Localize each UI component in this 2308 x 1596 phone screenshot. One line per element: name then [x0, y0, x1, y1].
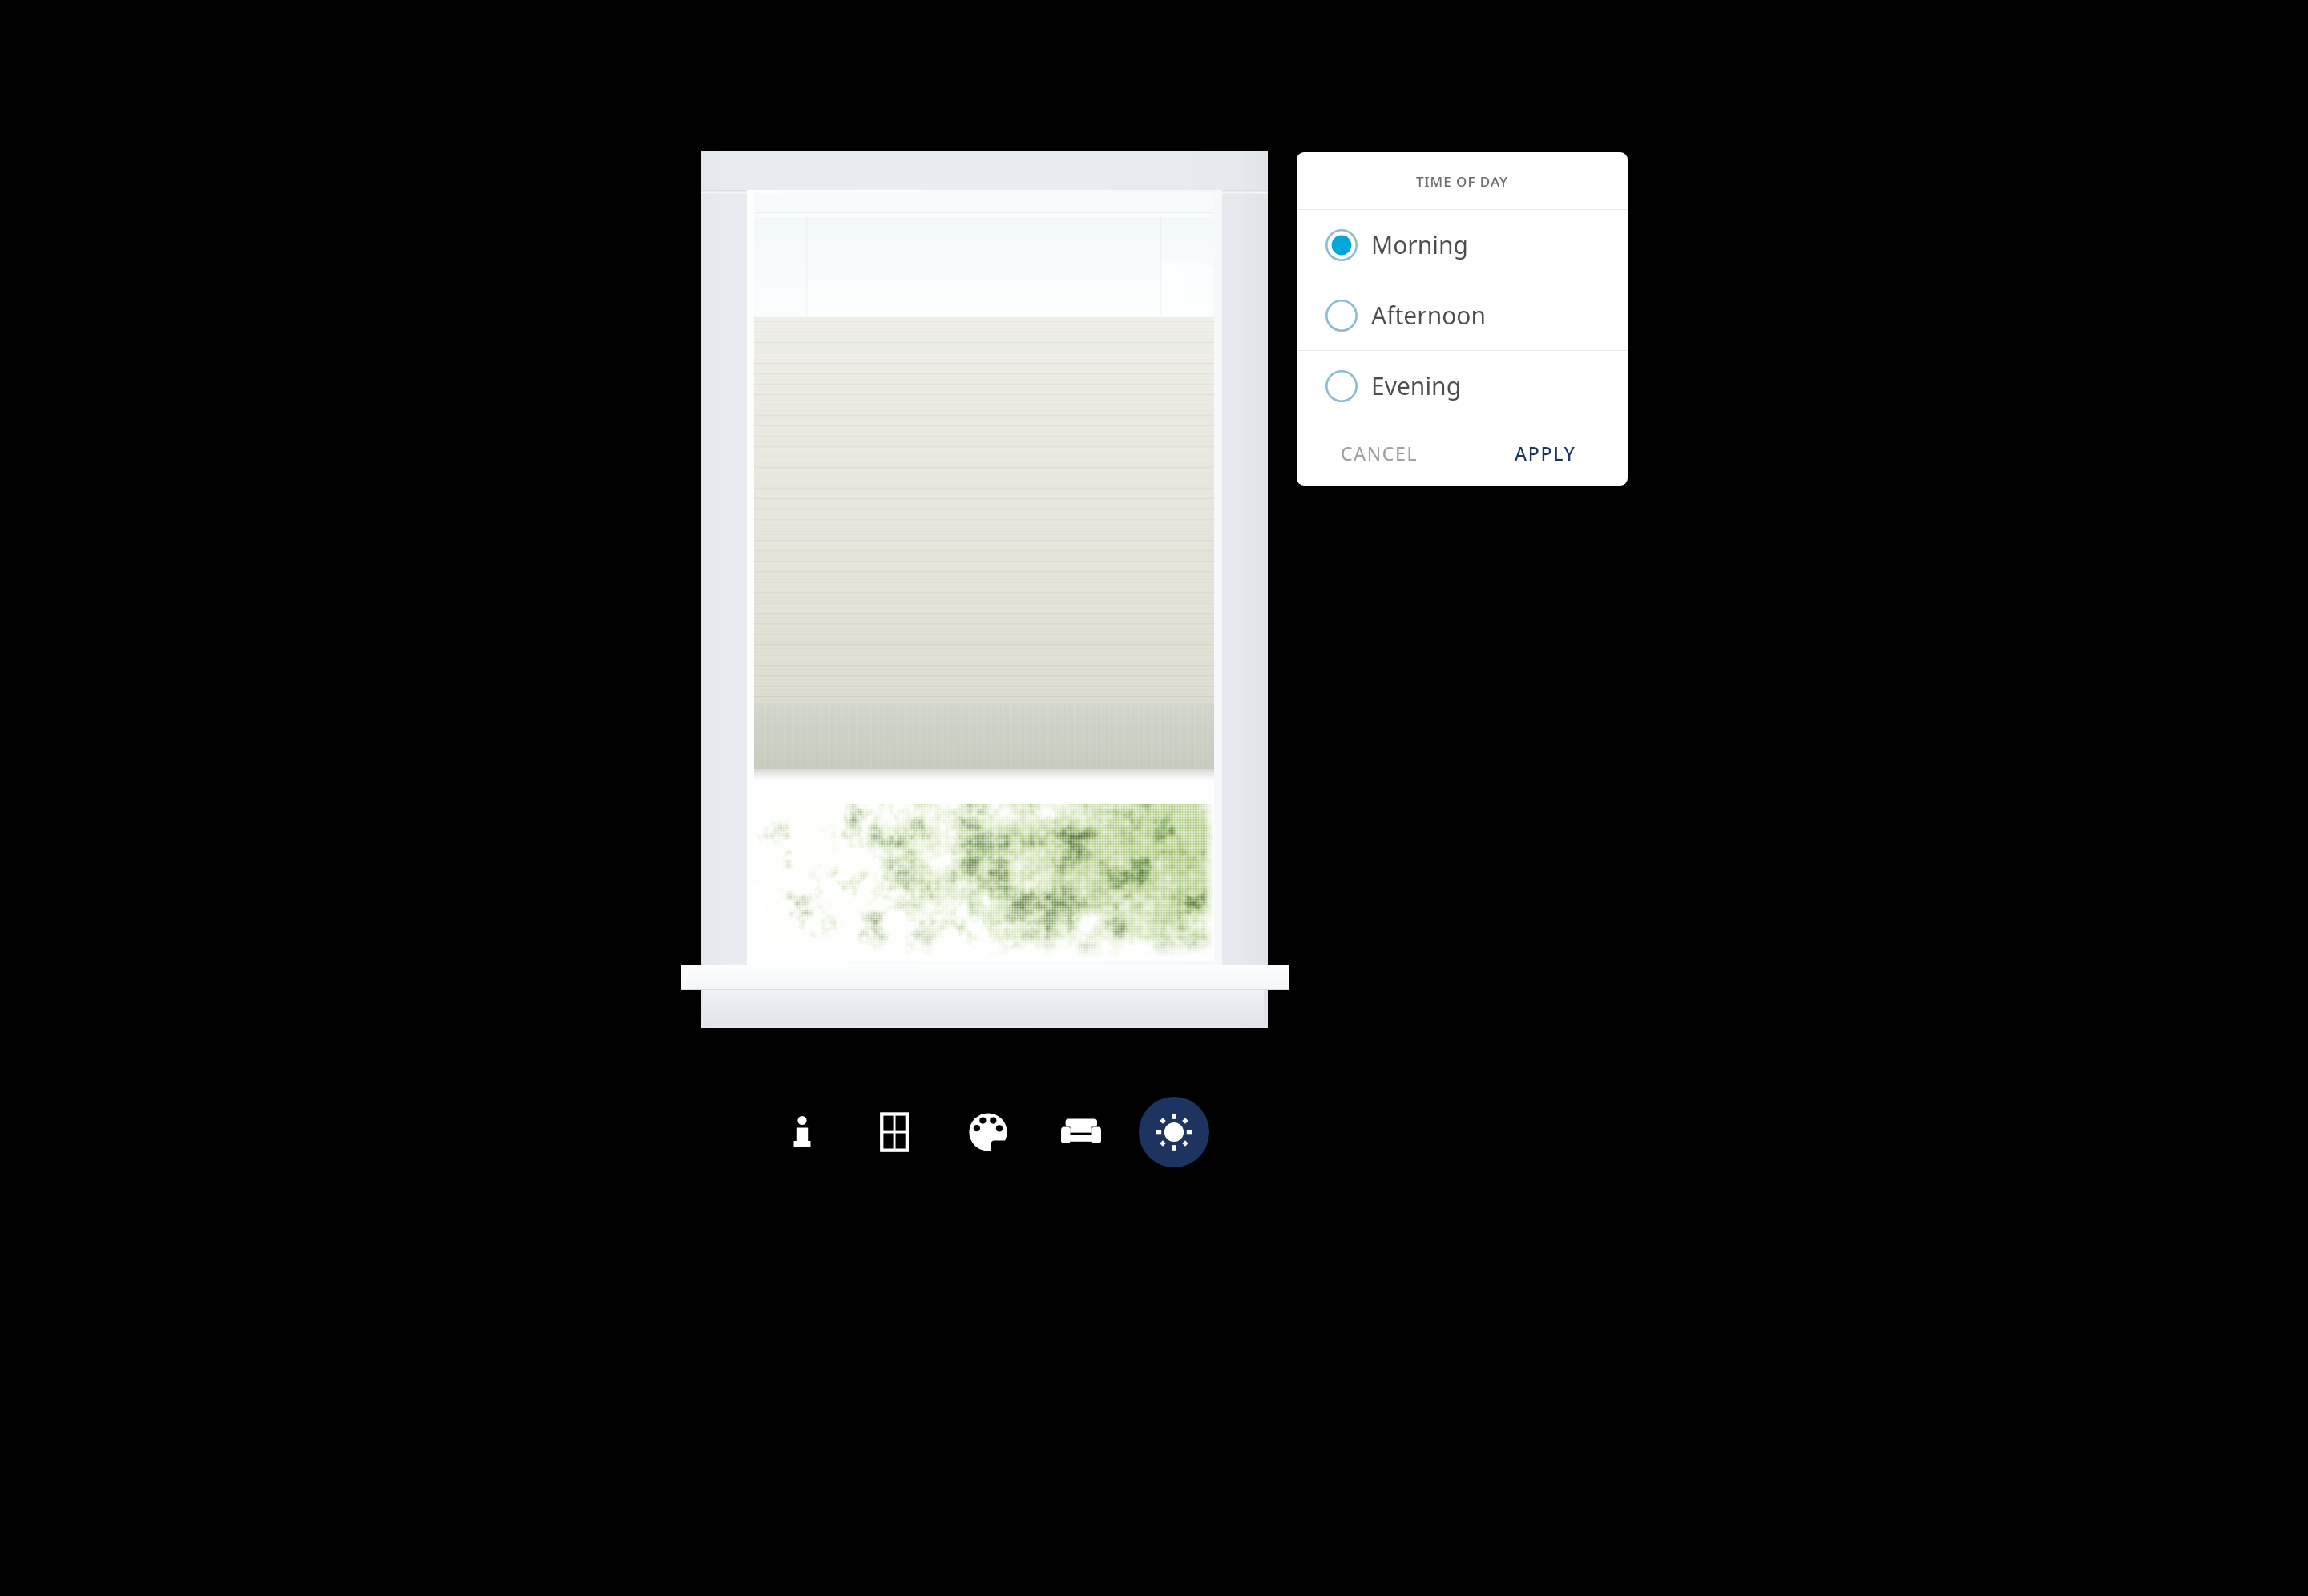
button[interactable]: Colors [953, 1097, 1023, 1167]
staticText: Morning [1371, 228, 1469, 261]
button[interactable]: Lighting [1139, 1097, 1209, 1167]
button[interactable]: APPLY [1463, 421, 1628, 484]
button[interactable]: Information [767, 1097, 837, 1167]
button[interactable]: Furniture [1046, 1097, 1116, 1167]
button[interactable]: Morning [1297, 210, 1628, 280]
button[interactable]: CANCEL [1297, 421, 1463, 484]
button[interactable]: Afternoon [1297, 280, 1628, 350]
button[interactable]: Evening [1297, 351, 1628, 421]
button[interactable]: Window type [859, 1097, 930, 1167]
staticText: TIME OF DAY [1416, 172, 1508, 191]
staticText: Afternoon [1371, 299, 1487, 332]
staticText: Evening [1371, 369, 1462, 402]
staticText: APPLY [1515, 441, 1576, 465]
staticText: CANCEL [1341, 441, 1418, 465]
